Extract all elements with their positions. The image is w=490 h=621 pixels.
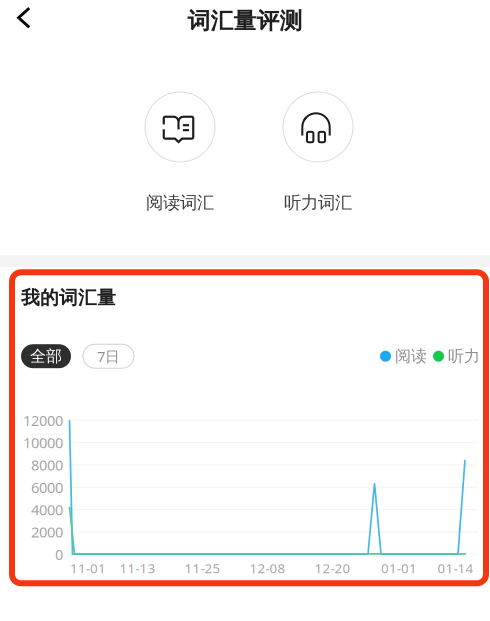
- staticText: 10000: [23, 433, 63, 452]
- staticText: 12-08: [249, 559, 285, 577]
- button[interactable]: Back: [0, 2, 43, 39]
- staticText: 6000: [31, 477, 63, 497]
- staticText: 阅读: [395, 346, 427, 366]
- button[interactable]: 听力词汇: [263, 92, 373, 213]
- staticText: 01-01: [381, 559, 417, 577]
- button[interactable]: 阅读词汇: [125, 92, 235, 213]
- staticText: 11-01: [70, 559, 106, 577]
- staticText: 0: [55, 544, 63, 564]
- staticText: 12-20: [314, 559, 350, 577]
- staticText: 4000: [31, 500, 63, 519]
- staticText: 2000: [31, 522, 63, 542]
- staticText: 阅读词汇: [146, 192, 214, 213]
- staticText: 8000: [31, 455, 63, 475]
- staticText: 词汇量评测: [187, 7, 302, 35]
- button[interactable]: 7日: [83, 344, 134, 368]
- staticText: 11-25: [184, 559, 220, 577]
- staticText: 全部: [30, 346, 62, 366]
- button[interactable]: 全部: [21, 344, 71, 368]
- staticText: 我的词汇量: [21, 286, 116, 309]
- staticText: 12000: [23, 410, 63, 430]
- staticText: 听力词汇: [284, 192, 352, 213]
- staticText: 7日: [97, 346, 120, 366]
- staticText: 01-14: [437, 559, 473, 577]
- staticText: 听力: [448, 346, 480, 366]
- staticText: 11-13: [119, 559, 155, 577]
